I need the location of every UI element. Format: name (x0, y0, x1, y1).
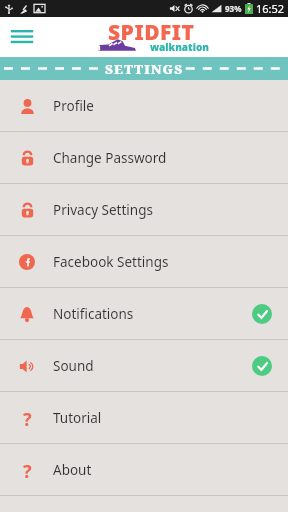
staticText: ? (23, 407, 32, 429)
button[interactable]: Profile (0, 80, 288, 131)
staticText: 16:52 (256, 1, 285, 16)
staticText: 93% (225, 3, 242, 14)
staticText: Notifications (53, 305, 134, 323)
button[interactable]: Sound (0, 340, 288, 391)
staticText: SETTINGS (105, 60, 184, 78)
staticText: Privacy Settings (53, 201, 153, 219)
button[interactable]: ? (0, 444, 288, 495)
staticText: About (53, 461, 92, 479)
staticText: Profile (53, 97, 94, 115)
staticText: Facebook Settings (53, 253, 169, 271)
button[interactable]: ? (0, 392, 288, 443)
staticText: Change Password (53, 149, 167, 167)
staticText: Tutorial (53, 409, 102, 427)
button[interactable]: Change Password (0, 132, 288, 183)
button[interactable]: Privacy Settings (0, 184, 288, 235)
button[interactable]: Open navigation menu (8, 23, 36, 51)
staticText: ? (23, 459, 32, 481)
staticText: walknation (150, 40, 209, 54)
button[interactable]: Facebook Settings (0, 236, 288, 287)
staticText: Sound (53, 357, 94, 375)
button[interactable]: Notifications (0, 288, 288, 339)
staticText: SPIDFIT (108, 18, 195, 47)
